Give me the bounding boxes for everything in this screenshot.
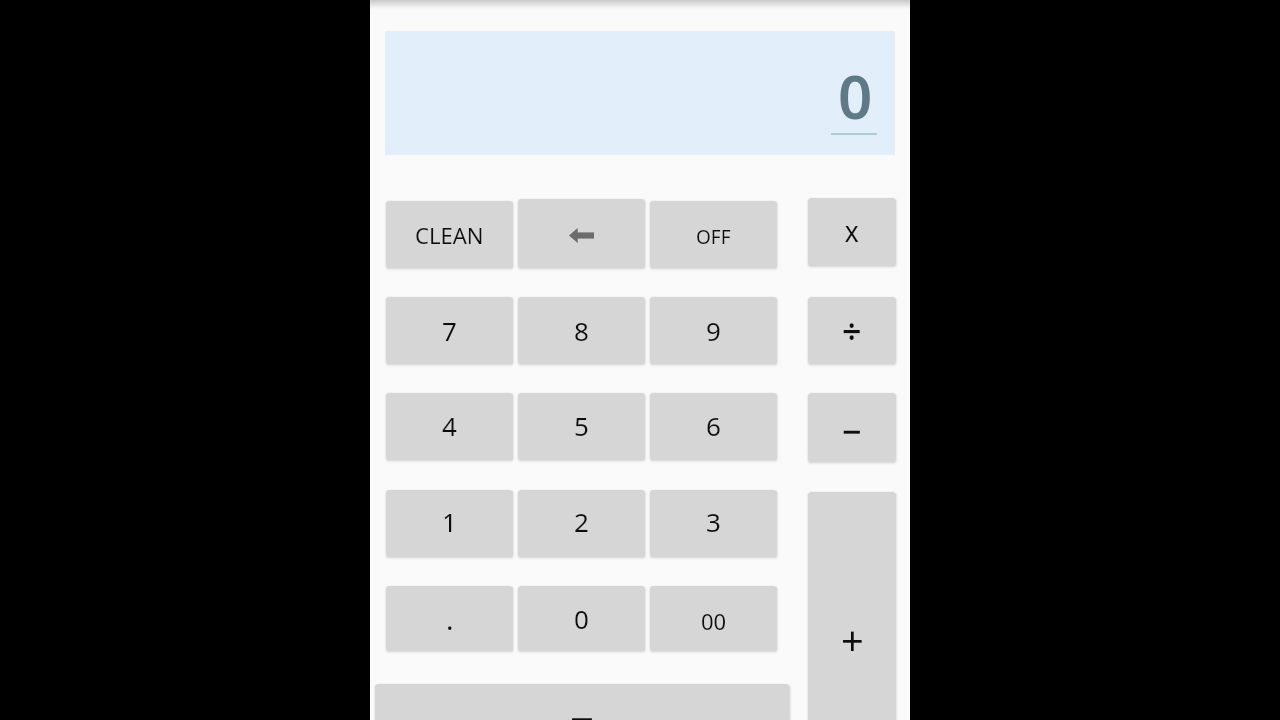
staticText: =: [570, 694, 595, 720]
button[interactable]: Backspace: [518, 199, 645, 268]
button[interactable]: OFF: [650, 201, 777, 268]
staticText: 9: [706, 313, 721, 348]
button[interactable]: 0: [518, 586, 645, 651]
button[interactable]: .: [386, 586, 513, 651]
staticText: CLEAN: [415, 220, 484, 250]
button[interactable]: 7: [386, 297, 513, 364]
staticText: 2: [574, 504, 589, 539]
staticText: 7: [442, 313, 457, 348]
staticText: −: [842, 408, 862, 454]
button[interactable]: 3: [650, 490, 777, 557]
staticText: X: [845, 218, 859, 248]
button[interactable]: −: [808, 393, 896, 462]
button[interactable]: 1: [386, 490, 513, 557]
button[interactable]: 9: [650, 297, 777, 364]
button[interactable]: 4: [386, 393, 513, 460]
staticText: ÷: [842, 308, 862, 354]
staticText: +: [841, 612, 864, 666]
button[interactable]: +: [808, 492, 896, 720]
button[interactable]: ÷: [808, 297, 896, 364]
staticText: 0: [574, 601, 589, 636]
button[interactable]: 2: [518, 490, 645, 557]
staticText: 00: [701, 606, 727, 636]
button[interactable]: 8: [518, 297, 645, 364]
staticText: 3: [706, 504, 721, 539]
button[interactable]: 00: [650, 586, 777, 651]
staticText: 6: [706, 408, 721, 443]
staticText: OFF: [696, 224, 731, 250]
staticText: 0: [838, 55, 873, 137]
button[interactable]: 5: [518, 393, 645, 460]
button[interactable]: 6: [650, 393, 777, 460]
staticText: 8: [574, 313, 589, 348]
button[interactable]: CLEAN: [386, 201, 513, 268]
button[interactable]: =: [375, 684, 789, 720]
button[interactable]: X: [808, 198, 896, 266]
staticText: 1: [442, 504, 457, 539]
staticText: 5: [574, 408, 589, 443]
staticText: 4: [442, 408, 457, 443]
staticText: .: [446, 600, 454, 638]
